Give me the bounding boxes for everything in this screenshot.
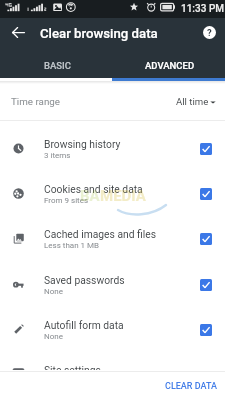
button[interactable]: BASIC <box>0 47 112 78</box>
button[interactable]: Cached images and files checkbox <box>200 233 212 245</box>
staticText: ADVANCED <box>145 60 195 71</box>
button[interactable]: Cached images and files <box>0 216 225 261</box>
button[interactable]: Browsing history <box>0 126 225 171</box>
staticText: From 9 sites <box>44 196 89 205</box>
staticText: MEDIA <box>100 187 146 205</box>
button[interactable]: Saved passwords checkbox <box>200 279 212 291</box>
button[interactable]: Time range <box>0 82 225 119</box>
button[interactable]: Autofill form data checkbox <box>200 324 212 336</box>
staticText: Browsing history <box>44 138 121 150</box>
staticText: Cookies and site data <box>44 183 143 195</box>
button[interactable]: Cookies and site data <box>0 171 225 216</box>
staticText: BASIC <box>44 60 71 71</box>
staticText: Autofill form data <box>44 319 124 331</box>
staticText: All time <box>176 96 209 107</box>
button[interactable]: CLEAR DATA <box>159 377 223 396</box>
staticText: Site settings <box>44 364 101 376</box>
staticText: 3 items <box>44 151 71 160</box>
staticText: Time range <box>11 96 61 107</box>
staticText: None <box>44 332 63 341</box>
button[interactable]: Cookies and site data checkbox <box>200 188 212 200</box>
staticText: 11:33 PM <box>181 3 225 15</box>
button[interactable]: Site settings <box>0 352 225 397</box>
button[interactable]: Saved passwords <box>0 262 225 307</box>
button[interactable]: Navigate up <box>5 19 31 45</box>
staticText: BA <box>80 187 100 205</box>
button[interactable]: Autofill form data <box>0 307 225 352</box>
staticText: Cached images and files <box>44 228 157 240</box>
staticText: None <box>44 287 63 296</box>
staticText: ? <box>207 27 212 38</box>
staticText: Saved passwords <box>44 274 125 286</box>
staticText: CLEAR DATA <box>165 381 217 392</box>
button[interactable]: Browsing history checkbox <box>200 143 212 155</box>
staticText: Less than 1 MB <box>44 241 100 250</box>
button[interactable]: ADVANCED <box>112 47 225 78</box>
button[interactable]: Help and feedback <box>196 19 222 45</box>
staticText: Clear browsing data <box>40 26 158 41</box>
